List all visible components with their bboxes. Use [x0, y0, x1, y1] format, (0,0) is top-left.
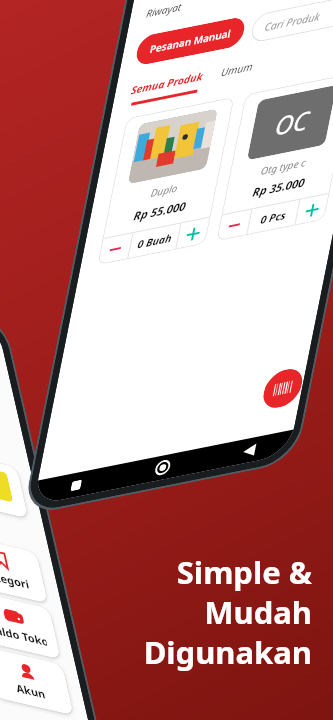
staticText: 0 Pcs	[254, 198, 293, 237]
button[interactable]: Back	[237, 439, 261, 463]
button[interactable]: Riwayat	[131, 0, 202, 34]
staticText: Riwayat	[140, 0, 189, 34]
button[interactable]: Decrease	[206, 197, 262, 253]
staticText: Rp 35.000	[245, 154, 313, 222]
staticText: Alat	[0, 485, 1, 513]
button[interactable]: Kategori	[0, 504, 68, 634]
button[interactable]: Recents	[66, 475, 86, 495]
button[interactable]: Increase	[166, 206, 221, 261]
button[interactable]: Alat	[0, 419, 48, 549]
button[interactable]: Semua Produk	[119, 40, 214, 135]
button[interactable]: Saldo Toko	[0, 560, 80, 690]
button[interactable]: Duplo	[38, 53, 293, 308]
staticText: Rp 55.000	[126, 177, 194, 245]
button[interactable]: Scan barcode	[245, 350, 321, 426]
staticText: OC	[259, 89, 326, 156]
button[interactable]: Umum	[214, 46, 260, 92]
staticText: Cari Produk	[258, 0, 327, 56]
button[interactable]: Increase	[285, 182, 333, 237]
staticText: Kategori	[0, 547, 37, 610]
staticText: Semua Produk	[124, 40, 210, 126]
staticText: Duplo	[144, 170, 185, 211]
button[interactable]: Decrease	[87, 221, 143, 277]
staticText: 0 Buah	[131, 217, 179, 265]
staticText: Otg type c	[254, 137, 313, 196]
button[interactable]: Pesanan Manual	[122, 0, 259, 110]
button[interactable]: Home	[148, 453, 178, 483]
staticText: Pesanan Manual	[143, 0, 238, 89]
button[interactable]: OC	[157, 30, 333, 285]
button[interactable]: Rekap	[232, 0, 296, 11]
button[interactable]: Akun	[0, 616, 93, 720]
button[interactable]: Cari Produk	[237, 0, 333, 89]
staticText: Simple & Mudah Digunakan	[143, 551, 312, 673]
staticText: Akun	[9, 669, 53, 713]
staticText: Saldo Toko	[0, 599, 54, 671]
